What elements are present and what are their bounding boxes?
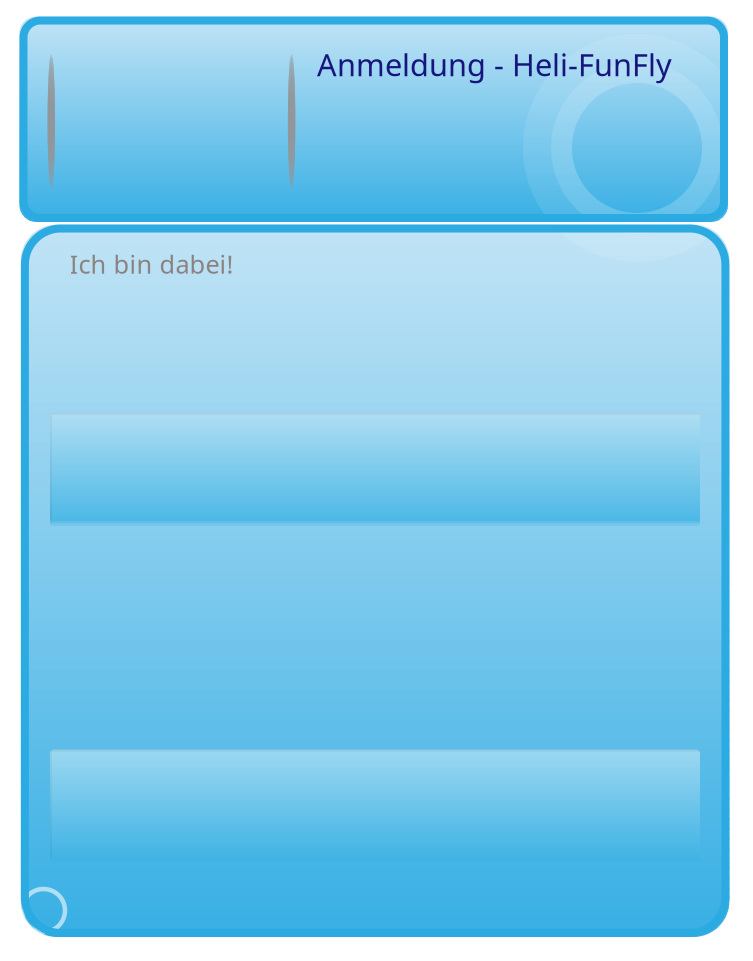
staticText: Anmeldung - Heli-FunFly — [317, 44, 672, 85]
button[interactable] — [50, 749, 700, 862]
staticText: Ich bin dabei! — [70, 247, 234, 281]
button[interactable] — [50, 412, 700, 525]
